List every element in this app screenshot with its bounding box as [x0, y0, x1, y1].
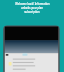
staticText: unlocks your plan — [21, 6, 43, 10]
staticText: subscription — [24, 10, 40, 14]
staticText: Welcome back! Information — [15, 2, 50, 6]
